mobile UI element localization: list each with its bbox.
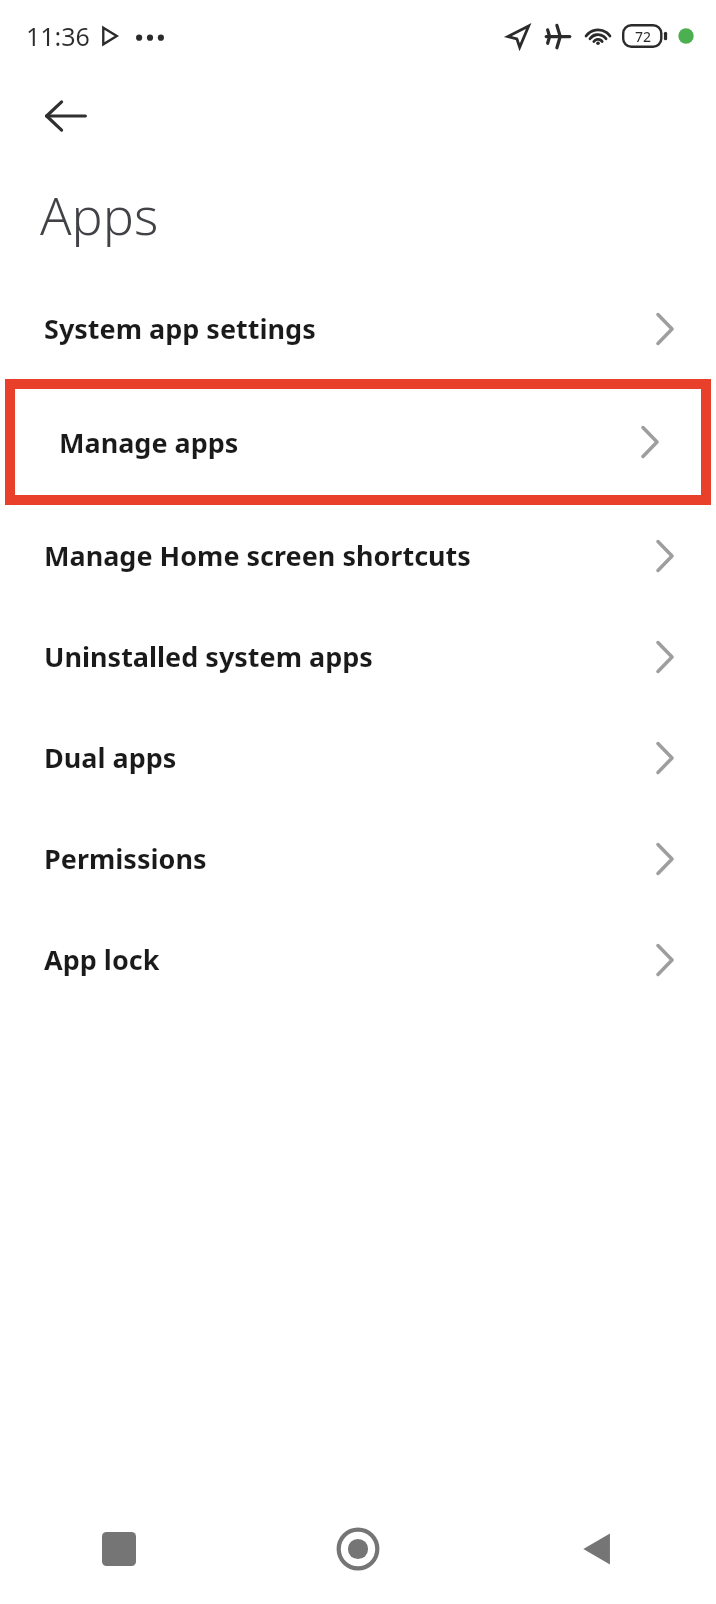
button[interactable]: System app settings bbox=[0, 278, 716, 379]
button[interactable]: Uninstalled system apps bbox=[0, 606, 716, 707]
staticText: Permissions bbox=[44, 840, 654, 877]
staticText: Uninstalled system apps bbox=[44, 638, 654, 675]
button[interactable]: Back bbox=[477, 1494, 716, 1604]
staticText: 11:36 bbox=[26, 19, 90, 53]
button[interactable]: Manage apps bbox=[15, 389, 701, 495]
staticText: System app settings bbox=[44, 310, 654, 347]
button[interactable]: App lock bbox=[0, 909, 716, 1010]
staticText: Manage apps bbox=[59, 424, 639, 461]
button[interactable]: Back bbox=[22, 72, 110, 160]
staticText: Manage Home screen shortcuts bbox=[44, 537, 654, 574]
staticText: Dual apps bbox=[44, 739, 654, 776]
staticText: 72 bbox=[635, 27, 652, 46]
button[interactable]: Manage Home screen shortcuts bbox=[0, 505, 716, 606]
staticText: App lock bbox=[44, 941, 654, 978]
button[interactable]: Permissions bbox=[0, 808, 716, 909]
button[interactable]: Recent apps bbox=[0, 1494, 238, 1604]
staticText: Apps bbox=[40, 179, 159, 250]
button[interactable]: Dual apps bbox=[0, 707, 716, 808]
button[interactable]: Home bbox=[238, 1494, 477, 1604]
